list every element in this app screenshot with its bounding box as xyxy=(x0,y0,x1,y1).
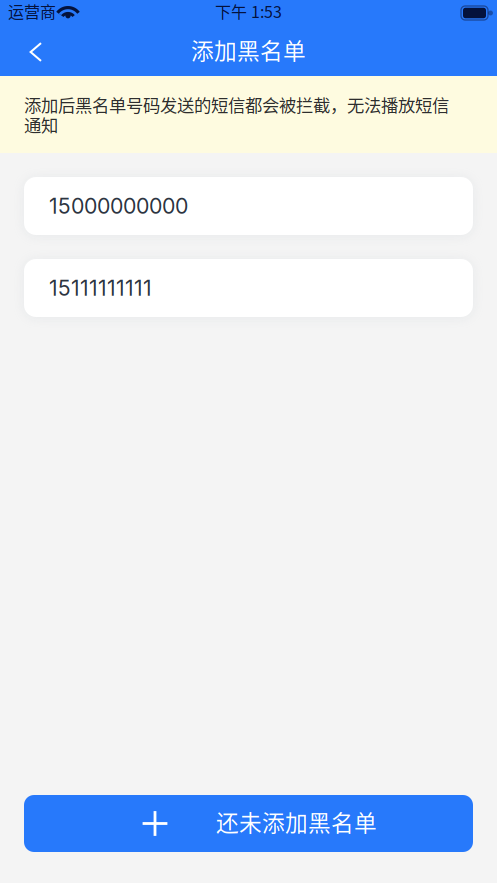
staticText: 添加黑名单 xyxy=(191,33,306,66)
button[interactable]: 15000000000 xyxy=(24,177,473,235)
staticText: 下午 1:53 xyxy=(215,0,282,23)
staticText: 15111111111 xyxy=(49,275,152,301)
button[interactable]: 返回 xyxy=(0,29,61,75)
staticText: 添加后黑名单号码发送的短信都会被拦截，无法播放短信通知 xyxy=(24,92,449,137)
staticText: 运营商 xyxy=(8,0,56,23)
button[interactable]: 还未添加黑名单 xyxy=(24,795,473,852)
staticText: 还未添加黑名单 xyxy=(216,805,377,838)
staticText: 15000000000 xyxy=(49,193,188,219)
button[interactable]: 15111111111 xyxy=(24,259,473,317)
